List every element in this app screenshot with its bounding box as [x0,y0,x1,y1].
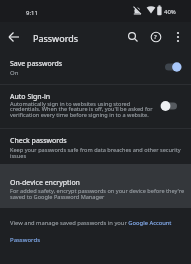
staticText: Keep your passwords safe from data breac… [10,146,185,159]
button[interactable] [6,29,22,45]
staticText: 40% [164,8,176,16]
staticText: Passwords [33,32,79,44]
staticText: Automatically sign in to websites using … [10,100,155,119]
button[interactable]: Check passwords [0,129,191,163]
button[interactable]: Auto Sign-in [0,85,191,128]
staticText: On-device encryption [10,178,80,188]
button[interactable]: Save passwords [0,52,191,84]
staticText: View and manage saved passwords in your … [10,219,172,227]
button[interactable] [125,29,141,45]
staticText: Passwords [10,236,41,244]
button[interactable]: ? [148,29,164,45]
button[interactable] [160,100,178,112]
staticText: On [10,69,19,77]
button[interactable]: On-device encryption [0,164,191,208]
button[interactable]: View and manage saved passwords in your … [0,214,191,230]
staticText: ? [154,33,157,41]
button[interactable] [164,61,182,73]
button[interactable] [170,29,186,45]
staticText: Check passwords [10,136,67,146]
staticText: Save passwords [10,59,63,69]
staticText: 9:11 [26,9,38,17]
staticText: Auto Sign-in [10,92,51,102]
staticText: For added safety, encrypt passwords on y… [10,187,185,200]
